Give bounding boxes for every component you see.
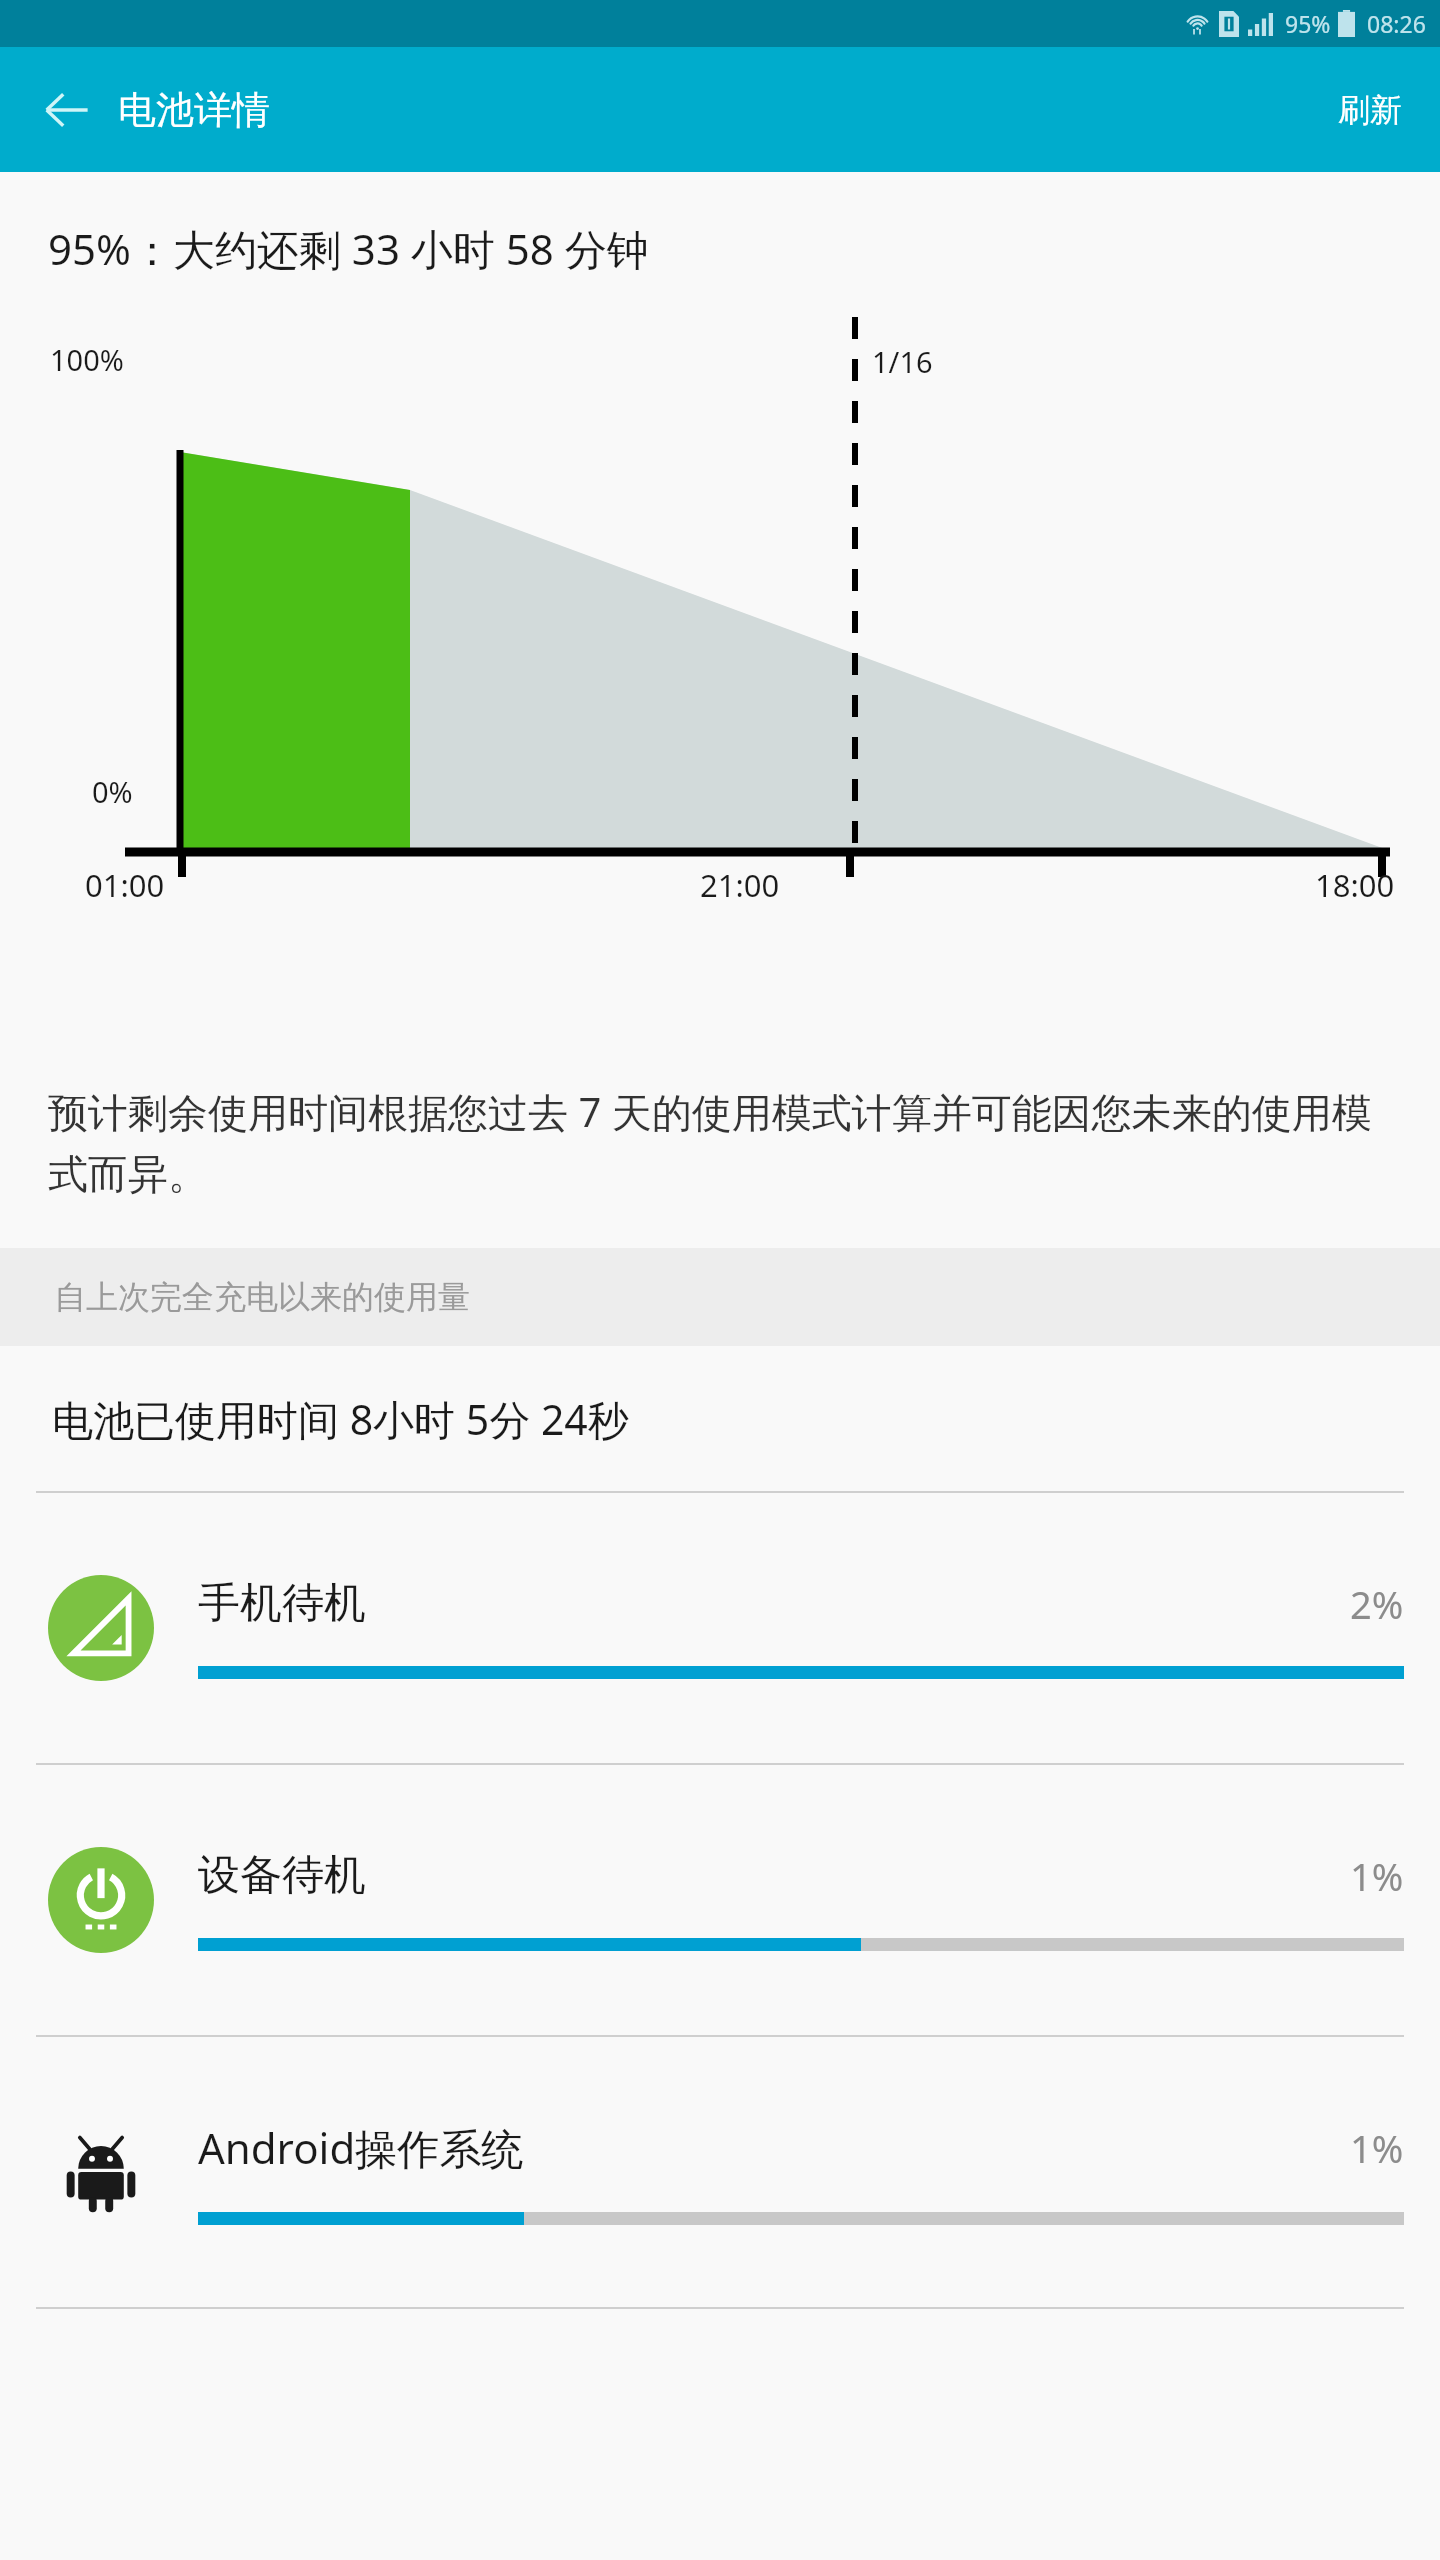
staticText: Android操作系统 <box>198 2119 1350 2176</box>
staticText: 电池已使用时间 8小时 5分 24秒 <box>52 1391 629 1447</box>
staticText: 01:00 <box>85 864 165 906</box>
button[interactable]: 手机待机 <box>0 1493 1440 1763</box>
staticText: 自上次完全充电以来的使用量 <box>54 1277 470 1317</box>
staticText: 100% <box>50 340 124 379</box>
staticText: 95% <box>1285 8 1331 39</box>
staticText: 电池详情 <box>118 86 270 134</box>
staticText: 08:26 <box>1367 8 1426 39</box>
button[interactable]: 刷新 <box>1326 76 1414 144</box>
button[interactable]: Back <box>38 82 94 138</box>
staticText: 手机待机 <box>198 1577 1350 1630</box>
staticText: 18:00 <box>1315 864 1395 906</box>
button[interactable]: 设备待机 <box>0 1765 1440 2035</box>
staticText: 1% <box>1350 1850 1404 1902</box>
button[interactable]: Android操作系统 <box>0 2037 1440 2307</box>
staticText: 1/16 <box>872 342 933 381</box>
staticText: 2% <box>1350 1578 1404 1630</box>
staticText: 95%：大约还剩 33 小时 58 分钟 <box>48 220 649 277</box>
staticText: 刷新 <box>1338 90 1402 130</box>
staticText: 0% <box>92 772 133 811</box>
staticText: 1% <box>1350 2122 1404 2174</box>
staticText: 设备待机 <box>198 1849 1350 1902</box>
staticText: 21:00 <box>700 864 780 906</box>
staticText: 预计剩余使用时间根据您过去 7 天的使用模式计算并可能因您未来的使用模式而异。 <box>48 1084 1392 1200</box>
